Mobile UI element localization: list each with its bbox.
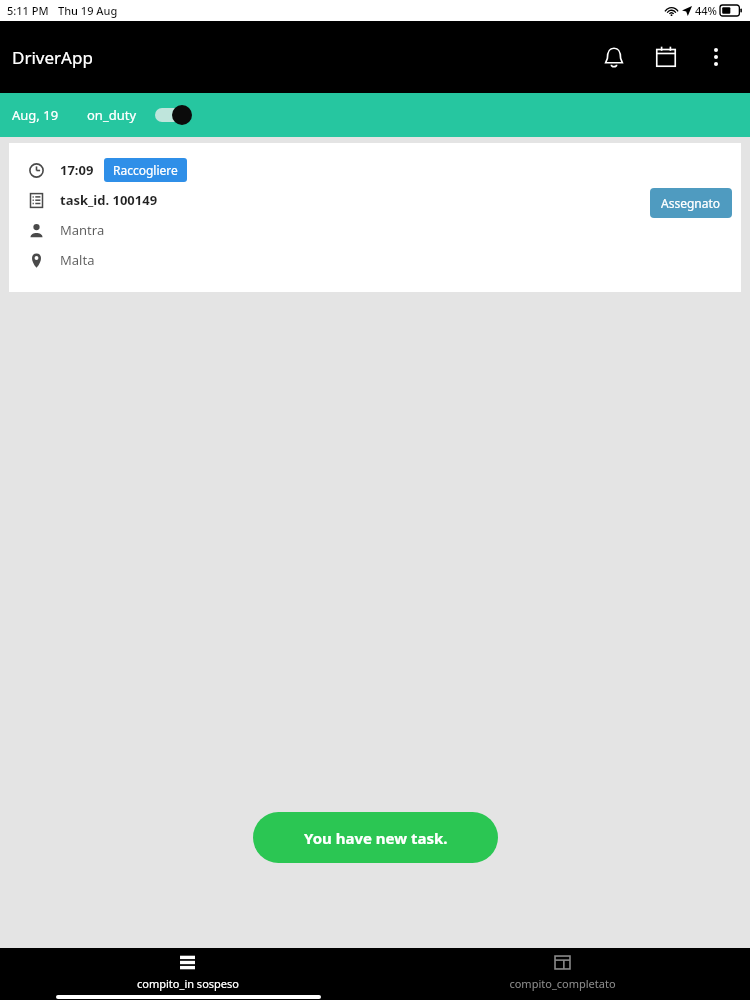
- button[interactable]: 17:09: [9, 143, 741, 292]
- staticText: DriverApp: [12, 46, 93, 69]
- button[interactable]: Notifications: [592, 35, 636, 79]
- button[interactable]: compito_completato: [375, 948, 750, 1000]
- staticText: 5:11 PM: [7, 3, 49, 18]
- button[interactable]: Calendar: [644, 35, 688, 79]
- staticText: 17:09: [60, 161, 94, 179]
- button[interactable]: On duty toggle: [155, 102, 195, 128]
- staticText: compito_in sospeso: [137, 976, 239, 991]
- staticText: Assegnato: [661, 195, 721, 211]
- staticText: Raccogliere: [113, 162, 178, 178]
- button[interactable]: Raccogliere: [104, 158, 187, 182]
- button[interactable]: More options: [696, 37, 736, 77]
- staticText: compito_completato: [509, 976, 616, 991]
- staticText: on_duty: [87, 106, 137, 124]
- staticText: Aug, 19: [12, 106, 59, 124]
- button[interactable]: Assegnato: [650, 188, 732, 218]
- staticText: 44%: [695, 3, 717, 18]
- button[interactable]: You have new task.: [253, 812, 498, 863]
- staticText: Malta: [60, 251, 95, 269]
- staticText: You have new task.: [304, 828, 448, 848]
- staticText: Thu 19 Aug: [58, 3, 118, 18]
- staticText: Mantra: [60, 221, 105, 239]
- button[interactable]: compito_in sospeso: [0, 948, 375, 1000]
- staticText: task_id. 100149: [60, 191, 158, 209]
